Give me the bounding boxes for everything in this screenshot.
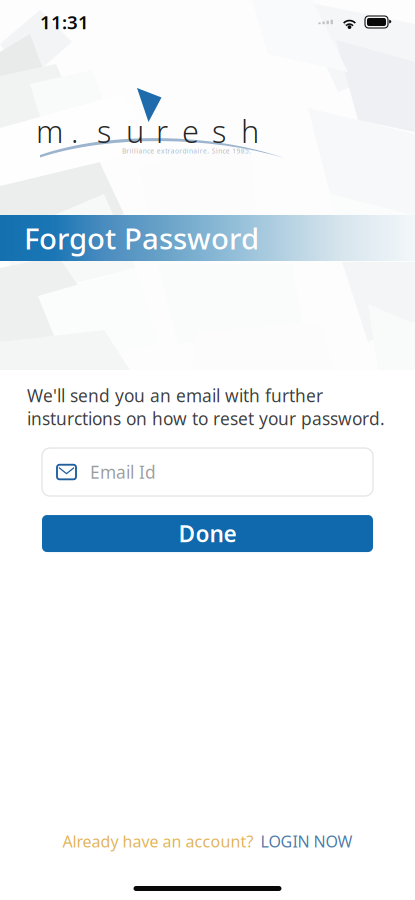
staticText: . bbox=[71, 111, 78, 151]
staticText: Brilliance extraordinaire. Since 1985. bbox=[122, 147, 251, 155]
staticText: e bbox=[182, 111, 199, 151]
staticText: LOGIN NOW bbox=[260, 831, 352, 852]
staticText: Email Id bbox=[90, 460, 156, 483]
staticText: Already have an account? bbox=[62, 831, 253, 852]
staticText: r bbox=[156, 111, 168, 151]
staticText: u bbox=[126, 111, 144, 151]
staticText: 11:31 bbox=[40, 10, 89, 34]
staticText: m bbox=[36, 111, 63, 151]
staticText: s bbox=[212, 111, 226, 151]
staticText: h bbox=[241, 111, 259, 151]
button[interactable]: LOGIN NOW bbox=[260, 831, 352, 852]
staticText: s bbox=[97, 111, 111, 151]
button[interactable]: Done bbox=[42, 515, 373, 552]
staticText: Forgot Password bbox=[24, 218, 259, 257]
staticText: Done bbox=[178, 518, 236, 549]
staticText: We'll send you an email with further ins… bbox=[27, 384, 385, 430]
